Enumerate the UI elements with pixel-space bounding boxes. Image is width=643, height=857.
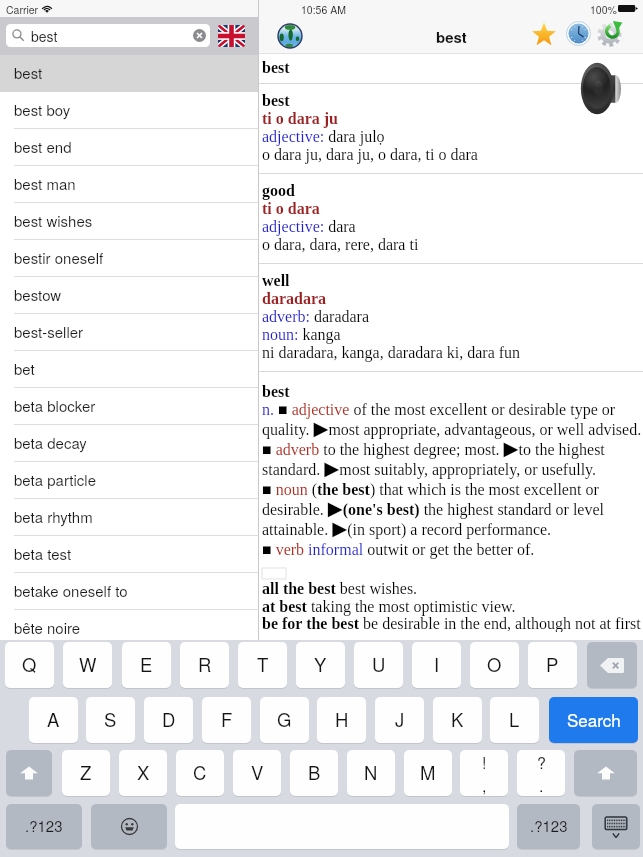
staticText: adjective: dara julọ — [262, 128, 385, 146]
button[interactable]: best — [0, 55, 258, 92]
staticText: U — [372, 651, 386, 677]
button[interactable]: Backspace — [587, 642, 637, 688]
staticText: best man — [14, 173, 76, 194]
staticText: . — [539, 774, 544, 796]
staticText: bestow — [14, 284, 62, 305]
staticText: T — [257, 651, 269, 677]
staticText: 100% — [590, 2, 617, 17]
button[interactable]: Pronounce — [580, 62, 621, 115]
button[interactable]: beta test — [0, 536, 258, 573]
button[interactable]: Shift — [574, 750, 637, 796]
button[interactable]: bête noire — [0, 610, 258, 647]
staticText: Carrier — [6, 2, 39, 17]
staticText: Search — [567, 707, 621, 731]
button[interactable]: E — [122, 642, 171, 688]
staticText: best — [14, 62, 43, 83]
button[interactable]: J — [375, 697, 424, 743]
staticText: good — [262, 182, 295, 200]
staticText: ti o dara — [262, 200, 320, 218]
button[interactable]: B — [290, 750, 338, 796]
button[interactable]: T — [238, 642, 287, 688]
staticText: beta particle — [14, 469, 97, 490]
button[interactable]: U — [354, 642, 403, 688]
staticText: beta decay — [14, 432, 87, 453]
button[interactable]: Language — [218, 25, 245, 47]
button[interactable]: Settings — [597, 20, 624, 47]
staticText: daradara — [262, 290, 326, 308]
staticText: betake oneself to — [14, 580, 128, 601]
button[interactable]: Q — [5, 642, 54, 688]
button[interactable]: beta particle — [0, 462, 258, 499]
staticText: O — [487, 651, 502, 677]
button[interactable]: Emoji — [91, 804, 167, 849]
button[interactable]: Search — [549, 697, 638, 743]
button[interactable]: best man — [0, 166, 258, 203]
staticText: ? — [537, 751, 546, 774]
button[interactable]: Clear — [188, 24, 210, 47]
button[interactable]: betake oneself to — [0, 573, 258, 610]
staticText: H — [335, 706, 349, 732]
button[interactable]: C — [176, 750, 224, 796]
button[interactable]: ! — [460, 750, 508, 796]
staticText: beta blocker — [14, 395, 96, 416]
button[interactable]: A — [29, 697, 78, 743]
button[interactable]: W — [63, 642, 112, 688]
button[interactable]: .?123 — [6, 804, 82, 849]
button[interactable]: Dictionary — [277, 23, 303, 49]
staticText: 10:56 AM — [301, 2, 346, 17]
button[interactable]: History — [566, 21, 591, 46]
staticText: A — [47, 706, 60, 732]
button[interactable]: ? — [517, 750, 565, 796]
staticText: beta rhythm — [14, 506, 93, 527]
button[interactable]: K — [433, 697, 482, 743]
button[interactable]: V — [233, 750, 281, 796]
staticText: G — [277, 706, 292, 732]
staticText: all the best best wishes. at best taking… — [262, 580, 643, 632]
button[interactable]: best — [6, 24, 210, 47]
button[interactable]: beta decay — [0, 425, 258, 462]
button[interactable]: H — [317, 697, 366, 743]
button[interactable]: F — [202, 697, 251, 743]
staticText: D — [162, 706, 176, 732]
button[interactable]: O — [470, 642, 519, 688]
staticText: o dara, dara, rere, dara ti — [262, 236, 419, 254]
staticText: best — [262, 383, 290, 401]
button[interactable]: P — [528, 642, 577, 688]
button[interactable]: R — [180, 642, 229, 688]
staticText: adverb: daradara — [262, 308, 370, 326]
staticText: E — [140, 651, 153, 677]
staticText: S — [104, 706, 117, 732]
button[interactable]: best wishes — [0, 203, 258, 240]
button[interactable]: best end — [0, 129, 258, 166]
button[interactable]: Shift — [6, 750, 52, 796]
button[interactable]: Favourite — [531, 21, 557, 47]
button[interactable]: bet — [0, 351, 258, 388]
staticText: W — [79, 651, 97, 677]
button[interactable]: beta rhythm — [0, 499, 258, 536]
button[interactable]: beta blocker — [0, 388, 258, 425]
staticText: R — [198, 651, 212, 677]
staticText: K — [451, 706, 464, 732]
button[interactable]: bestir oneself — [0, 240, 258, 277]
button[interactable]: Z — [62, 750, 110, 796]
button[interactable]: I — [412, 642, 461, 688]
button[interactable]: bestow — [0, 277, 258, 314]
button[interactable]: D — [144, 697, 193, 743]
button[interactable]: N — [347, 750, 395, 796]
button[interactable]: Y — [296, 642, 345, 688]
staticText: best-seller — [14, 321, 84, 342]
button[interactable]: X — [119, 750, 167, 796]
button[interactable]: .?123 — [517, 804, 580, 849]
button[interactable]: Hide keyboard — [592, 804, 640, 849]
button[interactable]: best boy — [0, 92, 258, 129]
button[interactable]: S — [86, 697, 135, 743]
button[interactable]: G — [260, 697, 309, 743]
staticText: C — [193, 759, 207, 785]
staticText: P — [546, 651, 559, 677]
button[interactable]: L — [490, 697, 539, 743]
staticText: ! — [482, 751, 487, 774]
button[interactable]: M — [404, 750, 452, 796]
button[interactable]: best-seller — [0, 314, 258, 351]
staticText: well — [262, 272, 290, 290]
